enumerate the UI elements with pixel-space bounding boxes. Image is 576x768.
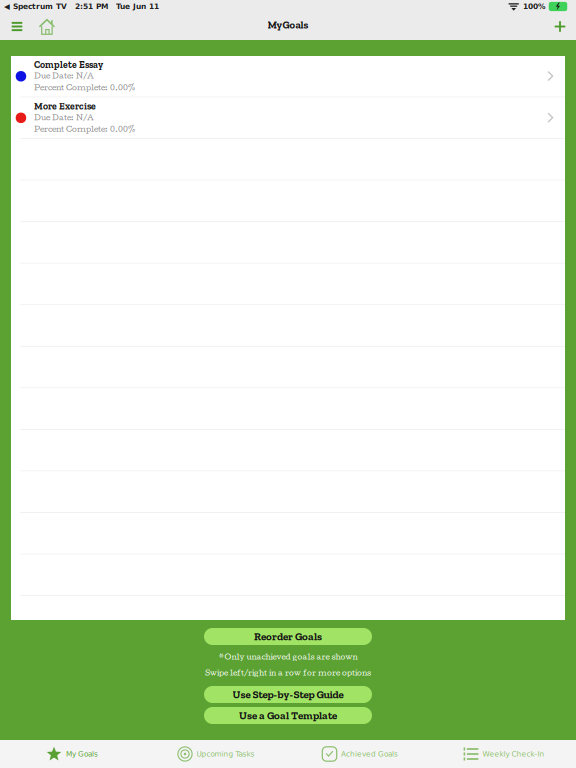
button[interactable]: Use a Goal Template [204, 707, 372, 724]
staticText: 100% [523, 2, 545, 11]
button[interactable]: Upcoming Tasks [144, 740, 288, 768]
button[interactable]: Complete Essay [11, 56, 565, 96]
staticText: Use a Goal Template [239, 709, 337, 722]
staticText: Achieved Goals [341, 750, 398, 758]
staticText: Weekly Check-In [482, 750, 544, 758]
staticText: 2:51 PM [75, 2, 108, 11]
staticText: Tue Jun 11 [116, 2, 159, 11]
button[interactable]: Use Step-by-Step Guide [204, 686, 372, 703]
staticText: More Exercise [34, 100, 96, 112]
button[interactable]: Home [28, 13, 66, 40]
staticText: Due Date: N/A [34, 71, 94, 80]
button[interactable]: Add goal [549, 13, 571, 40]
staticText: MyGoals [267, 19, 308, 31]
staticText: Percent Complete: 0.00% [34, 83, 135, 92]
staticText: Upcoming Tasks [197, 750, 255, 758]
staticText: Use Step-by-Step Guide [232, 688, 343, 701]
staticText: ◀ Spectrum TV [4, 2, 67, 11]
button[interactable]: Menu [6, 13, 28, 40]
button[interactable]: More Exercise [11, 97, 565, 138]
staticText: Percent Complete: 0.00% [34, 124, 135, 133]
button[interactable]: Reorder Goals [204, 628, 372, 645]
button[interactable]: Achieved Goals [288, 740, 432, 768]
staticText: Due Date: N/A [34, 113, 94, 122]
staticText: Reorder Goals [254, 630, 322, 643]
staticText: My Goals [66, 750, 98, 758]
staticText: Complete Essay [34, 59, 103, 70]
button[interactable]: My Goals [0, 740, 144, 768]
button[interactable]: Weekly Check-In [432, 740, 576, 768]
staticText: *Only unachieved goals are shown [218, 652, 357, 661]
staticText: Swipe left/right in a row for more optio… [205, 668, 371, 677]
